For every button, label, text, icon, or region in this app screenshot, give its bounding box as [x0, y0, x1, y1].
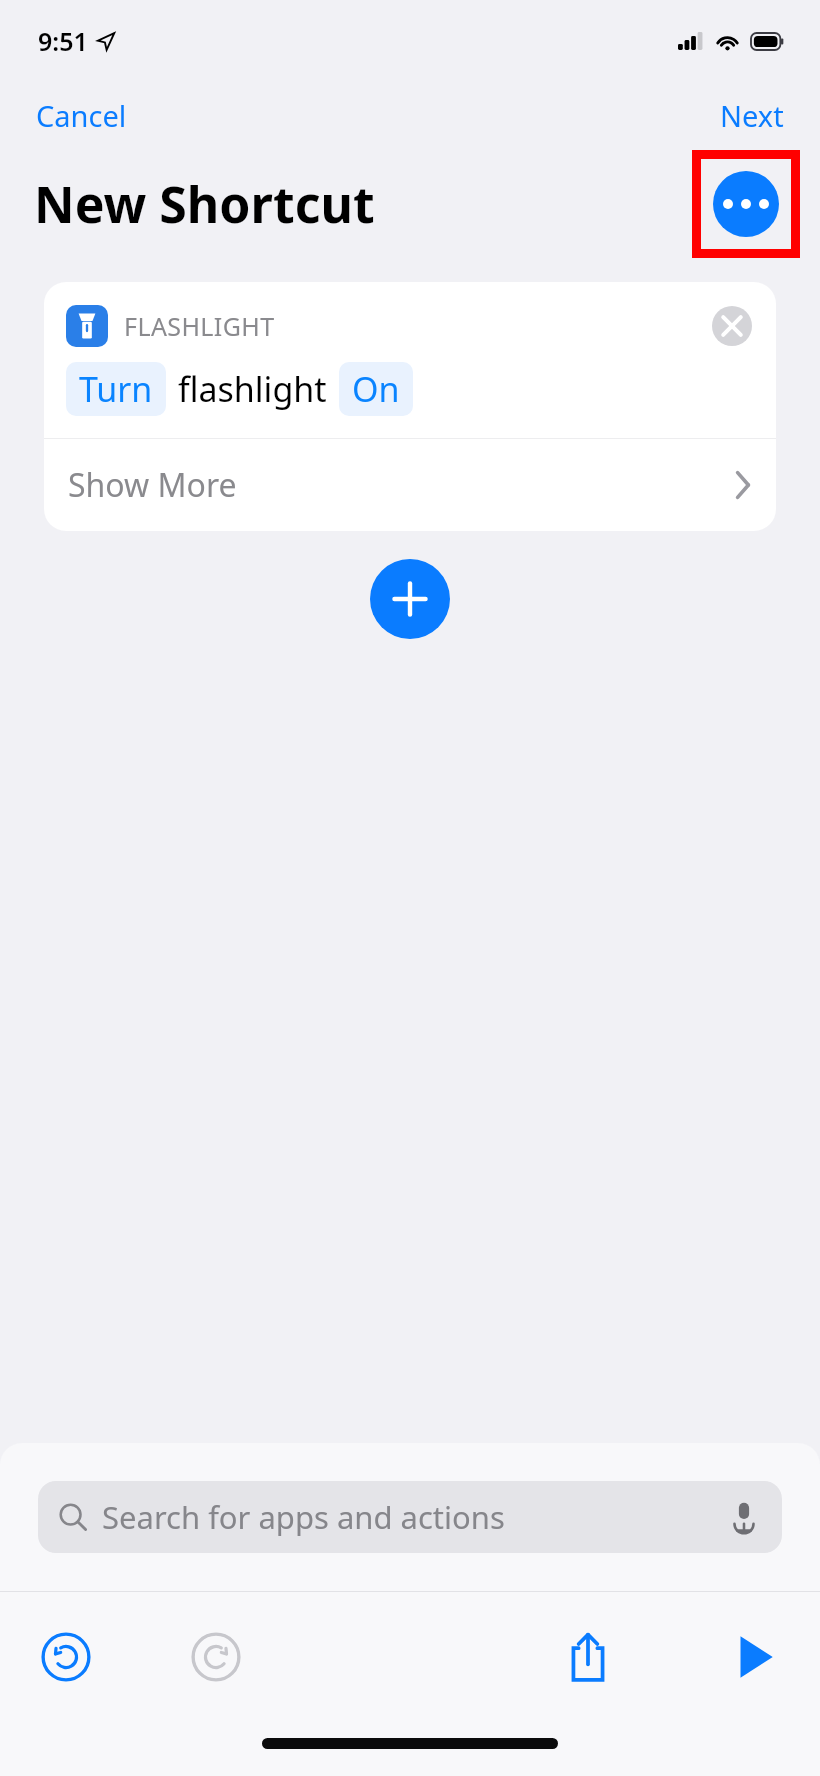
staticText: Turn: [79, 366, 153, 412]
button[interactable]: Undo: [28, 1619, 104, 1695]
staticText: flashlight: [178, 366, 327, 412]
staticText: New Shortcut: [34, 170, 375, 238]
button[interactable]: Turn: [66, 362, 166, 416]
staticText: Next: [720, 96, 784, 135]
staticText: 9:51: [38, 24, 88, 58]
button[interactable]: Cancel: [20, 90, 143, 141]
button[interactable]: Next: [704, 90, 800, 141]
button[interactable]: On: [339, 362, 413, 416]
button[interactable]: Voice search: [726, 1499, 762, 1535]
button[interactable]: Search for apps and actions: [38, 1481, 782, 1553]
button[interactable]: Run: [716, 1619, 792, 1695]
staticText: Show More: [68, 463, 237, 507]
button[interactable]: More options: [701, 159, 791, 249]
button[interactable]: Remove action: [710, 304, 754, 348]
staticText: Search for apps and actions: [102, 1496, 505, 1538]
button[interactable]: Share: [550, 1619, 626, 1695]
button[interactable]: FLASHLIGHT: [44, 282, 776, 438]
button[interactable]: Show More: [44, 439, 776, 531]
button[interactable]: Redo: [178, 1619, 254, 1695]
staticText: FLASHLIGHT: [124, 309, 275, 343]
staticText: On: [352, 366, 400, 412]
staticText: Cancel: [36, 96, 127, 135]
button[interactable]: Add action: [370, 559, 450, 639]
